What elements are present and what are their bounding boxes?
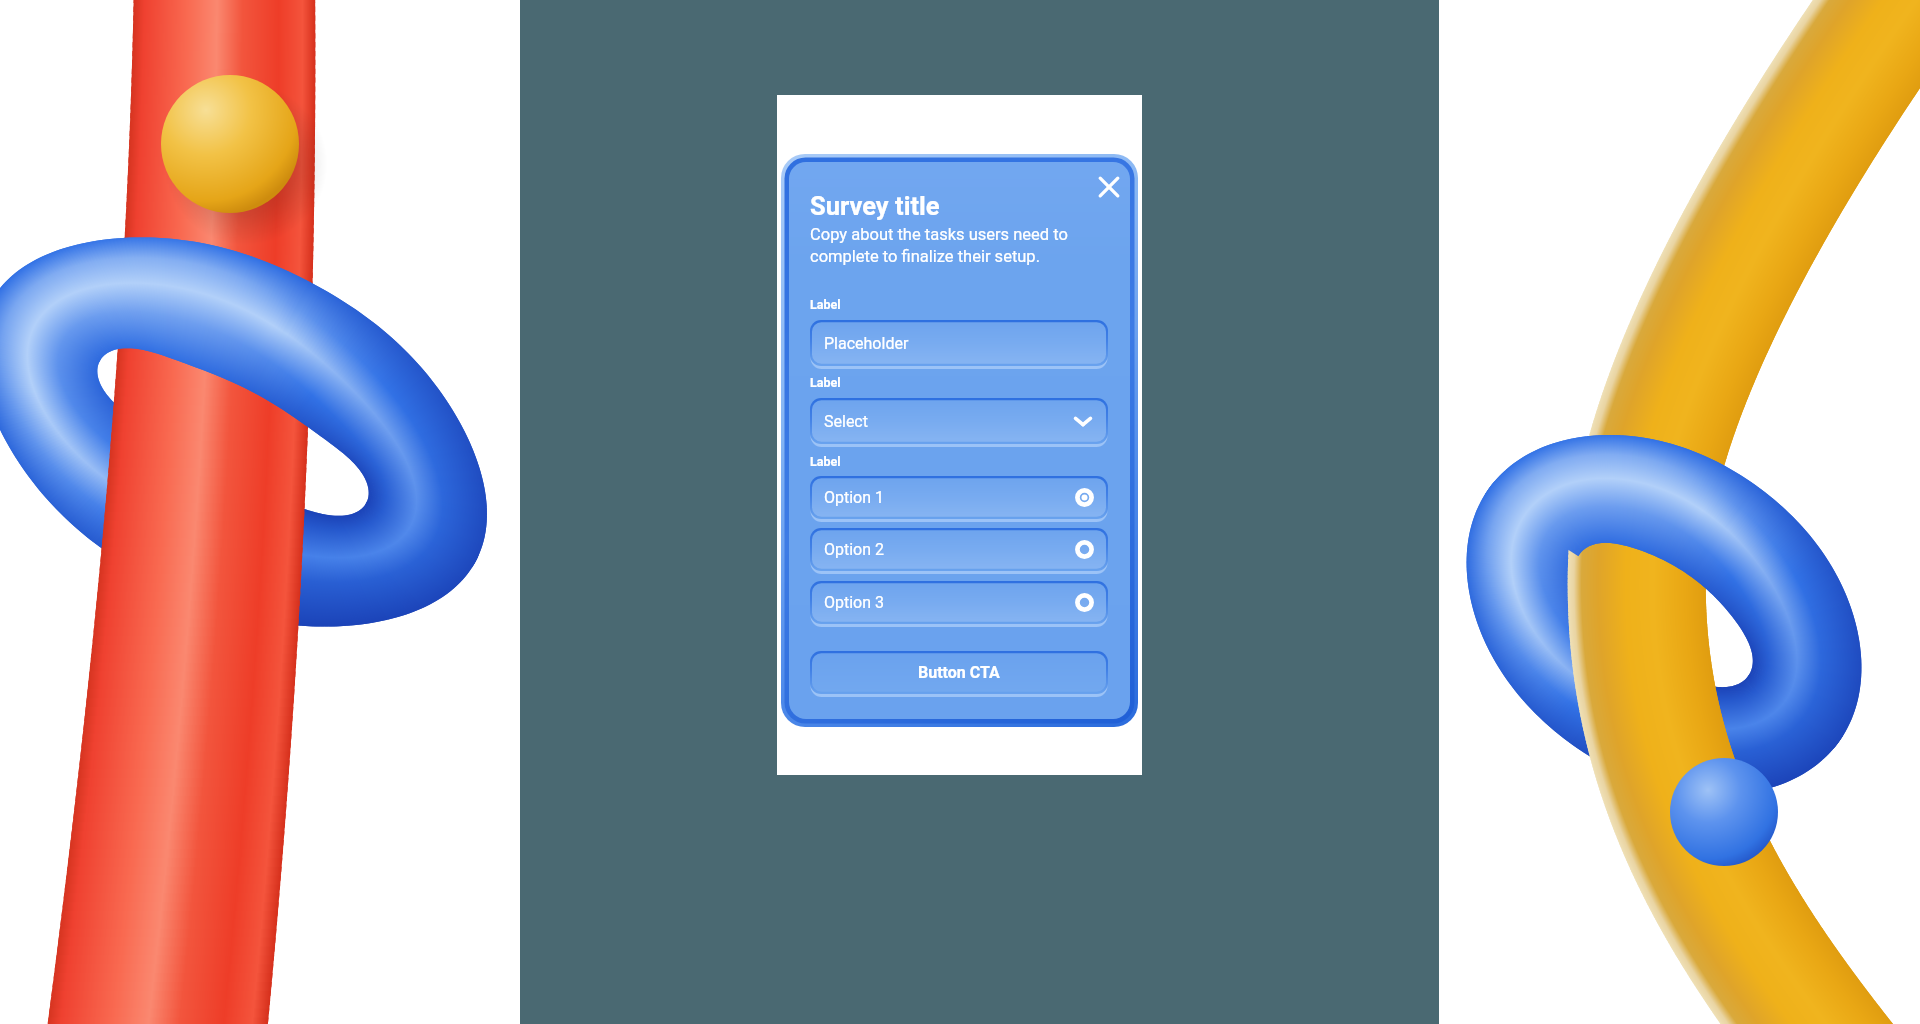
button[interactable]: Close (1092, 170, 1125, 203)
staticText: Survey title (810, 191, 940, 221)
button[interactable]: Placeholder (810, 320, 1108, 366)
staticText: Select (824, 412, 868, 431)
staticText: Button CTA (918, 663, 1000, 682)
button[interactable]: Select (810, 398, 1108, 444)
staticText: Copy about the tasks users need to compl… (810, 225, 1068, 266)
button[interactable]: Option 3 (810, 581, 1108, 624)
staticText: Label (810, 454, 841, 469)
button[interactable]: Option 2 (810, 528, 1108, 571)
staticText: Option 2 (824, 540, 885, 559)
staticText: Label (810, 297, 841, 312)
button[interactable]: Option 1 (810, 476, 1108, 519)
button[interactable]: Button CTA (810, 651, 1108, 694)
staticText: Option 3 (824, 593, 885, 612)
staticText: Label (810, 375, 841, 390)
staticText: Option 1 (824, 488, 885, 507)
staticText: Placeholder (824, 334, 909, 353)
